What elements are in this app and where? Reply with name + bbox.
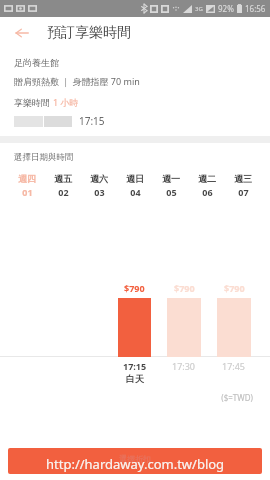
staticText: 白天 (126, 373, 144, 384)
staticText: $790 (124, 282, 145, 294)
button[interactable]: 17:15 (118, 357, 151, 384)
staticText: 贈肩頸熱敷 ｜ 身體指壓 70 min (14, 75, 140, 87)
staticText: 03 (94, 186, 105, 198)
staticText: 選擇日期與時間 (14, 152, 74, 163)
staticText: 16:56 (245, 3, 266, 14)
staticText: 週二 (198, 173, 216, 184)
staticText: 週六 (90, 173, 108, 184)
button[interactable]: 選擇折扣 (8, 448, 262, 474)
staticText: 17:15 (79, 114, 105, 128)
button[interactable]: 週五 (45, 171, 81, 200)
staticText: 02 (58, 186, 69, 198)
button[interactable]: 週四 (9, 171, 45, 200)
staticText: 07 (238, 186, 249, 198)
staticText: 預訂享樂時間 (47, 24, 131, 42)
button[interactable]: 週日 (117, 171, 153, 200)
staticText: 92% (218, 3, 234, 14)
staticText: 17:45 (222, 360, 246, 372)
button[interactable]: $790 (167, 282, 201, 357)
staticText: 1 小時 (53, 96, 79, 108)
staticText: 週日 (126, 173, 144, 184)
staticText: 選擇折扣 (119, 454, 151, 464)
button[interactable]: $790 (118, 282, 151, 357)
staticText: 01 (22, 186, 33, 198)
staticText: 週五 (54, 173, 72, 184)
staticText: 3G (195, 5, 203, 13)
staticText: 17:30 (172, 360, 196, 372)
staticText: 06 (202, 186, 213, 198)
staticText: 週一 (162, 173, 180, 184)
button[interactable]: 週二 (189, 171, 225, 200)
staticText: 週四 (18, 173, 36, 184)
button[interactable]: 17:30 (167, 357, 201, 372)
staticText: 04 (130, 186, 141, 198)
button[interactable]: 週一 (153, 171, 189, 200)
staticText: 足尚養生館 (14, 57, 59, 68)
staticText: $790 (174, 282, 195, 294)
button[interactable]: Back (9, 20, 35, 46)
button[interactable]: 17:45 (217, 357, 251, 372)
staticText: 享樂時間 (14, 96, 53, 108)
staticText: 17:15 (123, 360, 147, 372)
staticText: 週三 (234, 173, 252, 184)
staticText: 05 (166, 186, 177, 198)
button[interactable]: $790 (217, 282, 251, 357)
button[interactable]: 週六 (81, 171, 117, 200)
staticText: $790 (224, 282, 245, 294)
button[interactable]: 週三 (225, 171, 261, 200)
staticText: http://hardaway.com.tw/blog (46, 455, 225, 473)
staticText: ($=TWD) (0, 392, 253, 403)
